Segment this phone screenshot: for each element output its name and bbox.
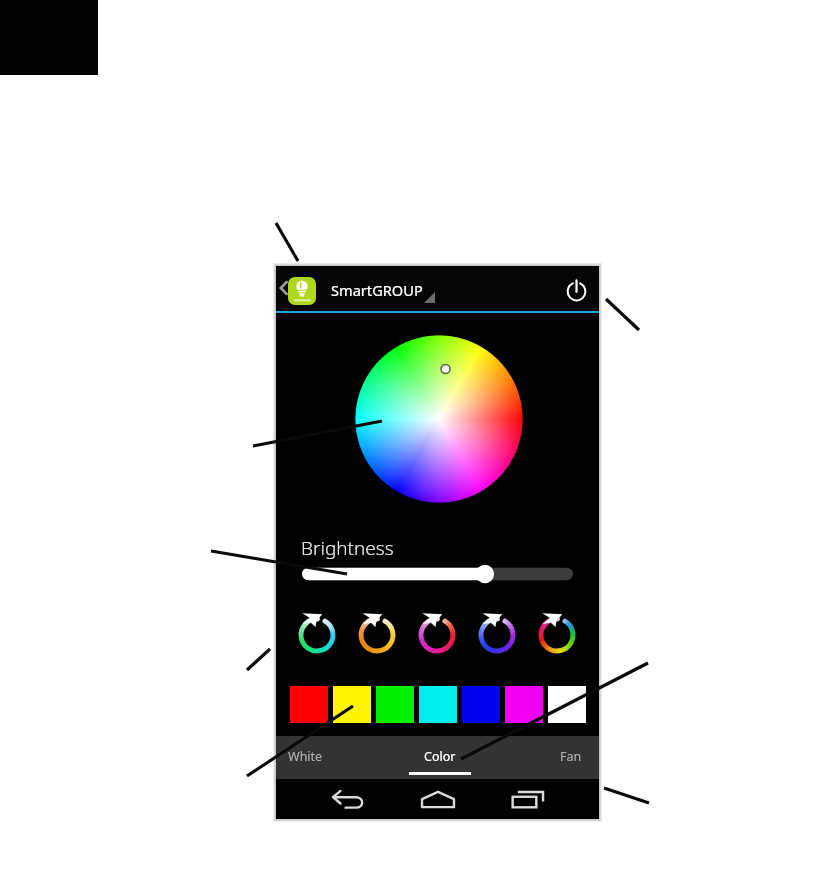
button[interactable]: Fan (551, 736, 591, 779)
button[interactable]: Preset colour (548, 686, 586, 723)
button[interactable]: Colour picker (355, 335, 523, 503)
button[interactable]: Back (276, 274, 290, 302)
button[interactable]: Preset colour (505, 686, 543, 723)
button[interactable]: Back (316, 779, 382, 819)
button[interactable]: Preset colour (290, 686, 328, 723)
button[interactable]: Color mode 5 (532, 610, 582, 660)
button[interactable]: Brightness slider (302, 560, 573, 588)
button[interactable]: White (281, 736, 329, 779)
button[interactable]: Home (405, 779, 471, 819)
button[interactable]: Color mode 4 (472, 610, 522, 660)
button[interactable]: Preset colour (333, 686, 371, 723)
staticText: SmartGROUP (331, 280, 423, 300)
button[interactable]: Power (560, 275, 592, 307)
button[interactable]: Color mode 2 (352, 610, 402, 660)
staticText: Fan (560, 748, 582, 765)
button[interactable]: Color mode 3 (412, 610, 462, 660)
button[interactable]: Recent apps (495, 779, 561, 819)
staticText: White (288, 748, 323, 765)
button[interactable]: Color mode 1 (292, 610, 342, 660)
staticText: Color (424, 748, 456, 765)
button[interactable]: App icon (288, 277, 316, 305)
staticText: Brightness (301, 535, 394, 561)
button[interactable]: Color (409, 736, 471, 779)
